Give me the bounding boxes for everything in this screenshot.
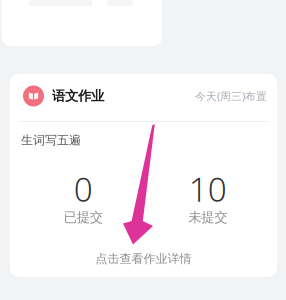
staticText: 语文作业 [52,88,104,104]
staticText: 10 [189,167,227,211]
staticText: 0 [74,167,93,211]
staticText: 今天(周三)布置 [195,89,267,103]
staticText: 已提交 [64,209,103,225]
staticText: 生词写五遍 [21,133,81,148]
staticText: 未提交 [188,209,227,225]
button[interactable]: 语文作业 [10,74,277,277]
staticText: 点击查看作业详情 [95,251,191,266]
